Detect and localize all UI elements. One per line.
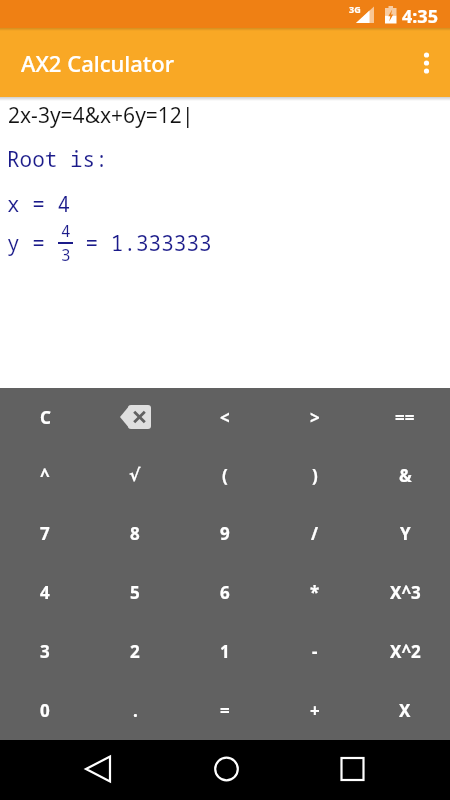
button[interactable]: 3: [0, 622, 90, 681]
button[interactable]: 0: [0, 681, 90, 740]
button[interactable]: [76, 747, 121, 792]
staticText: 6: [220, 581, 230, 604]
staticText: y =: [7, 229, 58, 258]
button[interactable]: *: [270, 563, 360, 622]
button[interactable]: 7: [0, 504, 90, 563]
staticText: 3: [40, 640, 50, 663]
staticText: /: [311, 522, 319, 545]
button[interactable]: 5: [90, 563, 180, 622]
staticText: 4: [40, 581, 50, 604]
staticText: Y: [400, 522, 411, 545]
button[interactable]: Y: [360, 504, 450, 563]
staticText: 2x-3y=4&x+6y=12|: [8, 101, 194, 130]
button[interactable]: [330, 747, 375, 792]
staticText: √: [129, 465, 141, 485]
button[interactable]: [90, 388, 180, 446]
button[interactable]: /: [270, 504, 360, 563]
button[interactable]: 9: [180, 504, 270, 563]
button[interactable]: >: [270, 388, 360, 446]
button[interactable]: X^2: [360, 622, 450, 681]
button[interactable]: ^: [0, 446, 90, 504]
button[interactable]: 1: [180, 622, 270, 681]
staticText: X: [399, 699, 411, 722]
button[interactable]: =: [180, 681, 270, 740]
staticText: x = 4: [7, 190, 70, 219]
button[interactable]: 2x-3y=4&x+6y=12|: [0, 97, 450, 129]
staticText: C: [40, 406, 51, 429]
staticText: ): [312, 464, 318, 487]
button[interactable]: X^3: [360, 563, 450, 622]
staticText: X^2: [390, 640, 421, 663]
staticText: 2: [130, 640, 140, 663]
staticText: 4:35: [402, 4, 438, 29]
staticText: 1: [220, 640, 230, 663]
staticText: ==: [395, 406, 415, 429]
staticText: 4: [61, 220, 71, 242]
button[interactable]: .: [90, 681, 180, 740]
staticText: &: [399, 464, 412, 487]
button[interactable]: √: [90, 446, 180, 504]
button[interactable]: ==: [360, 388, 450, 446]
staticText: 0: [40, 699, 50, 722]
staticText: 7: [40, 522, 50, 545]
button[interactable]: [204, 747, 249, 792]
staticText: 3G: [349, 3, 361, 15]
staticText: <: [220, 406, 230, 429]
button[interactable]: 8: [90, 504, 180, 563]
staticText: AX2 Calculator: [21, 48, 174, 78]
staticText: = 1.333333: [73, 229, 212, 258]
button[interactable]: C: [0, 388, 90, 446]
button[interactable]: +: [270, 681, 360, 740]
staticText: +: [310, 699, 320, 722]
staticText: X^3: [390, 581, 421, 604]
button[interactable]: &: [360, 446, 450, 504]
button[interactable]: (: [180, 446, 270, 504]
button[interactable]: ): [270, 446, 360, 504]
staticText: 5: [130, 581, 140, 604]
staticText: 9: [220, 522, 230, 545]
button[interactable]: -: [270, 622, 360, 681]
staticText: >: [310, 406, 320, 429]
button[interactable]: X: [360, 681, 450, 740]
button[interactable]: [402, 41, 446, 85]
staticText: .: [133, 699, 138, 722]
button[interactable]: 4: [0, 563, 90, 622]
staticText: 8: [130, 522, 140, 545]
staticText: =: [220, 699, 230, 722]
staticText: 3: [61, 244, 71, 266]
staticText: *: [310, 581, 320, 604]
button[interactable]: <: [180, 388, 270, 446]
staticText: ^: [40, 464, 50, 487]
staticText: -: [312, 640, 318, 663]
button[interactable]: 2: [90, 622, 180, 681]
staticText: Root is:: [7, 145, 108, 174]
button[interactable]: 6: [180, 563, 270, 622]
staticText: (: [222, 464, 228, 487]
